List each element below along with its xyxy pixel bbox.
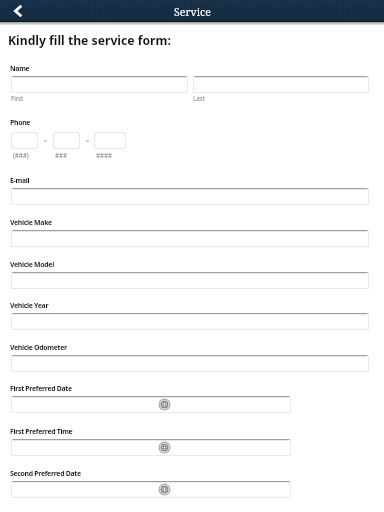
staticText: E-mail [10,176,30,185]
staticText: ### [55,151,67,160]
staticText: Last [193,94,205,103]
button[interactable] [11,188,369,205]
staticText: First Preferred Date [10,384,72,393]
button[interactable] [11,439,291,456]
button[interactable] [11,230,369,247]
button[interactable]: Choose date [158,398,171,411]
staticText: Phone [10,118,31,127]
staticText: Vehicle Year [10,301,49,310]
button[interactable] [193,76,369,93]
staticText: Name [10,64,30,73]
staticText: First [11,94,24,103]
button[interactable] [94,132,126,149]
button[interactable]: Back [7,0,29,21]
staticText: #### [96,151,112,160]
button[interactable] [11,272,369,289]
button[interactable] [11,355,369,372]
button[interactable]: Choose date [158,483,171,496]
staticText: (###) [13,151,29,160]
staticText: First Preferred Time [10,427,73,436]
button[interactable] [11,396,291,413]
button[interactable] [53,132,80,149]
button[interactable] [11,76,188,93]
staticText: Service [174,5,211,19]
staticText: Second Preferred Date [10,469,81,478]
button[interactable] [11,481,291,498]
staticText: Vehicle Odometer [10,343,67,352]
staticText: Vehicle Make [10,218,52,227]
staticText: Vehicle Model [10,260,54,269]
button[interactable]: Choose time [158,441,171,454]
button[interactable] [11,132,38,149]
button[interactable] [11,313,369,330]
staticText: Kindly fill the service form: [8,32,171,49]
